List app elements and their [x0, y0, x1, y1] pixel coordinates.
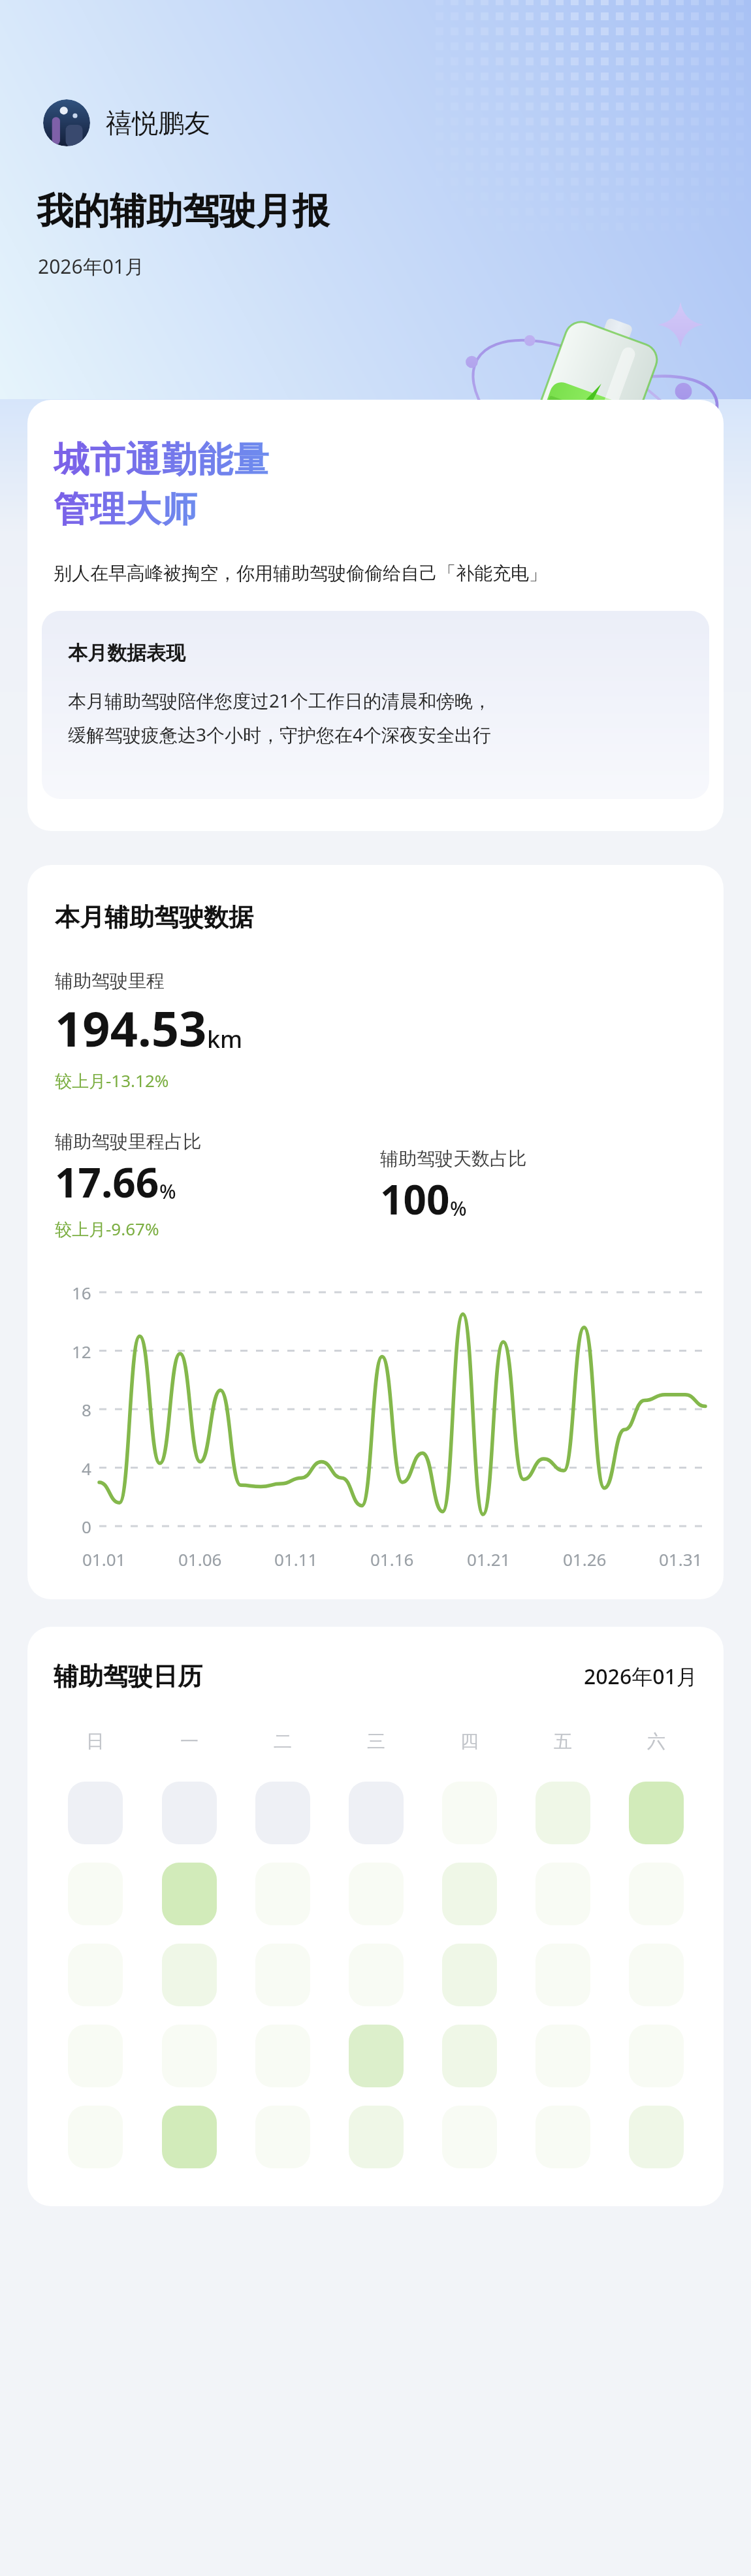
button[interactable]: 禧悦鹏友 [43, 99, 210, 146]
staticText: 01.06 [178, 1548, 222, 1571]
staticText: 城市通勤能量 [54, 438, 269, 482]
staticText: 01.31 [659, 1548, 703, 1571]
button[interactable]: 本月辅助驾驶数据 [27, 865, 724, 1599]
button[interactable] [349, 2025, 404, 2087]
button[interactable] [349, 2106, 404, 2168]
button[interactable] [162, 2106, 217, 2168]
button[interactable] [162, 1944, 217, 2006]
staticText: 本月辅助驾驶数据 [55, 902, 253, 933]
button[interactable] [349, 1782, 404, 1844]
staticText: 194.53 [55, 995, 207, 1061]
button[interactable] [68, 1782, 123, 1844]
staticText: 100 [380, 1171, 450, 1226]
staticText: 01.11 [274, 1548, 318, 1571]
staticText: 0 [82, 1515, 91, 1537]
staticText: 辅助驾驶日历 [54, 1661, 202, 1692]
staticText: 四 [460, 1730, 479, 1753]
staticText: 01.26 [563, 1548, 607, 1571]
staticText: 本月辅助驾驶陪伴您度过21个工作日的清晨和傍晚， [68, 688, 492, 713]
button[interactable] [442, 1863, 497, 1925]
staticText: 辅助驾驶里程占比 [55, 1130, 201, 1153]
button[interactable] [629, 2106, 684, 2168]
staticText: 较上月-13.12% [55, 1069, 169, 1092]
staticText: 别人在早高峰被掏空，你用辅助驾驶偷偷给自己「补能充电」 [54, 562, 547, 585]
staticText: 17.66 [55, 1154, 159, 1209]
button[interactable] [162, 1782, 217, 1844]
staticText: km [207, 1023, 243, 1055]
button[interactable]: 辅助驾驶日历 [27, 1627, 724, 2206]
button[interactable] [255, 1782, 310, 1844]
staticText: 2026年01月 [584, 1662, 697, 1691]
staticText: 01.16 [370, 1548, 414, 1571]
staticText: 管理大师 [54, 487, 197, 532]
staticText: 二 [274, 1730, 292, 1753]
staticText: 2026年01月 [38, 253, 144, 280]
staticText: % [159, 1178, 176, 1205]
staticText: 辅助驾驶天数占比 [380, 1147, 526, 1170]
staticText: 16 [72, 1281, 91, 1303]
staticText: 五 [554, 1730, 572, 1753]
staticText: % [450, 1195, 467, 1222]
staticText: 8 [82, 1398, 91, 1420]
staticText: 较上月-9.67% [55, 1217, 159, 1241]
staticText: 12 [72, 1340, 91, 1362]
staticText: 三 [367, 1730, 385, 1753]
staticText: 缓解驾驶疲惫达3个小时，守护您在4个深夜安全出行 [68, 722, 492, 747]
staticText: 我的辅助驾驶月报 [37, 188, 329, 235]
staticText: 辅助驾驶里程 [55, 970, 165, 992]
staticText: 01.01 [82, 1548, 126, 1571]
staticText: 六 [647, 1730, 665, 1753]
staticText: 禧悦鹏友 [106, 106, 210, 139]
other: Battery illustration [443, 295, 733, 562]
staticText: 一 [180, 1730, 199, 1753]
staticText: 4 [82, 1457, 91, 1479]
button[interactable] [535, 1782, 590, 1844]
staticText: 本月数据表现 [68, 641, 185, 666]
button[interactable] [629, 1782, 684, 1844]
staticText: 01.21 [467, 1548, 511, 1571]
button[interactable] [162, 1863, 217, 1925]
button[interactable] [442, 2025, 497, 2087]
staticText: 日 [86, 1730, 104, 1753]
button[interactable] [442, 1944, 497, 2006]
